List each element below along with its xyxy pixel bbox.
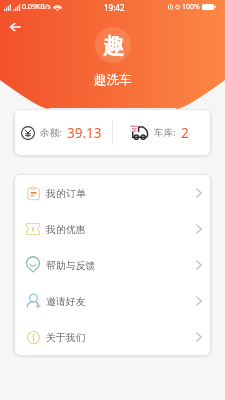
staticText: 39.13 <box>67 124 102 142</box>
button[interactable]: Back <box>4 16 25 37</box>
button[interactable]: 我的订单 <box>15 175 210 211</box>
staticText: 2 <box>181 124 189 142</box>
staticText: 关于我们 <box>46 331 86 343</box>
staticText: 帮助与反馈 <box>46 259 96 271</box>
button[interactable]: 我的优惠 <box>15 211 210 247</box>
button[interactable]: 邀请好友 <box>15 283 210 319</box>
button[interactable]: 帮助与反馈 <box>15 247 210 283</box>
staticText: 100% <box>182 2 200 12</box>
staticText: 趣 <box>103 33 124 59</box>
staticText: 我的优惠 <box>46 223 86 235</box>
button[interactable]: 余额: <box>15 110 112 155</box>
staticText: 邀请好友 <box>46 295 86 307</box>
staticText: 车库: <box>154 126 176 139</box>
staticText: 0.09KB/s <box>22 2 51 12</box>
staticText: 19:42 <box>104 2 125 13</box>
staticText: 趣洗车 <box>94 72 132 88</box>
button[interactable]: 关于我们 <box>15 319 210 355</box>
staticText: 我的订单 <box>46 187 86 199</box>
button[interactable]: 车库: <box>113 110 210 155</box>
staticText: 余额: <box>40 126 62 139</box>
